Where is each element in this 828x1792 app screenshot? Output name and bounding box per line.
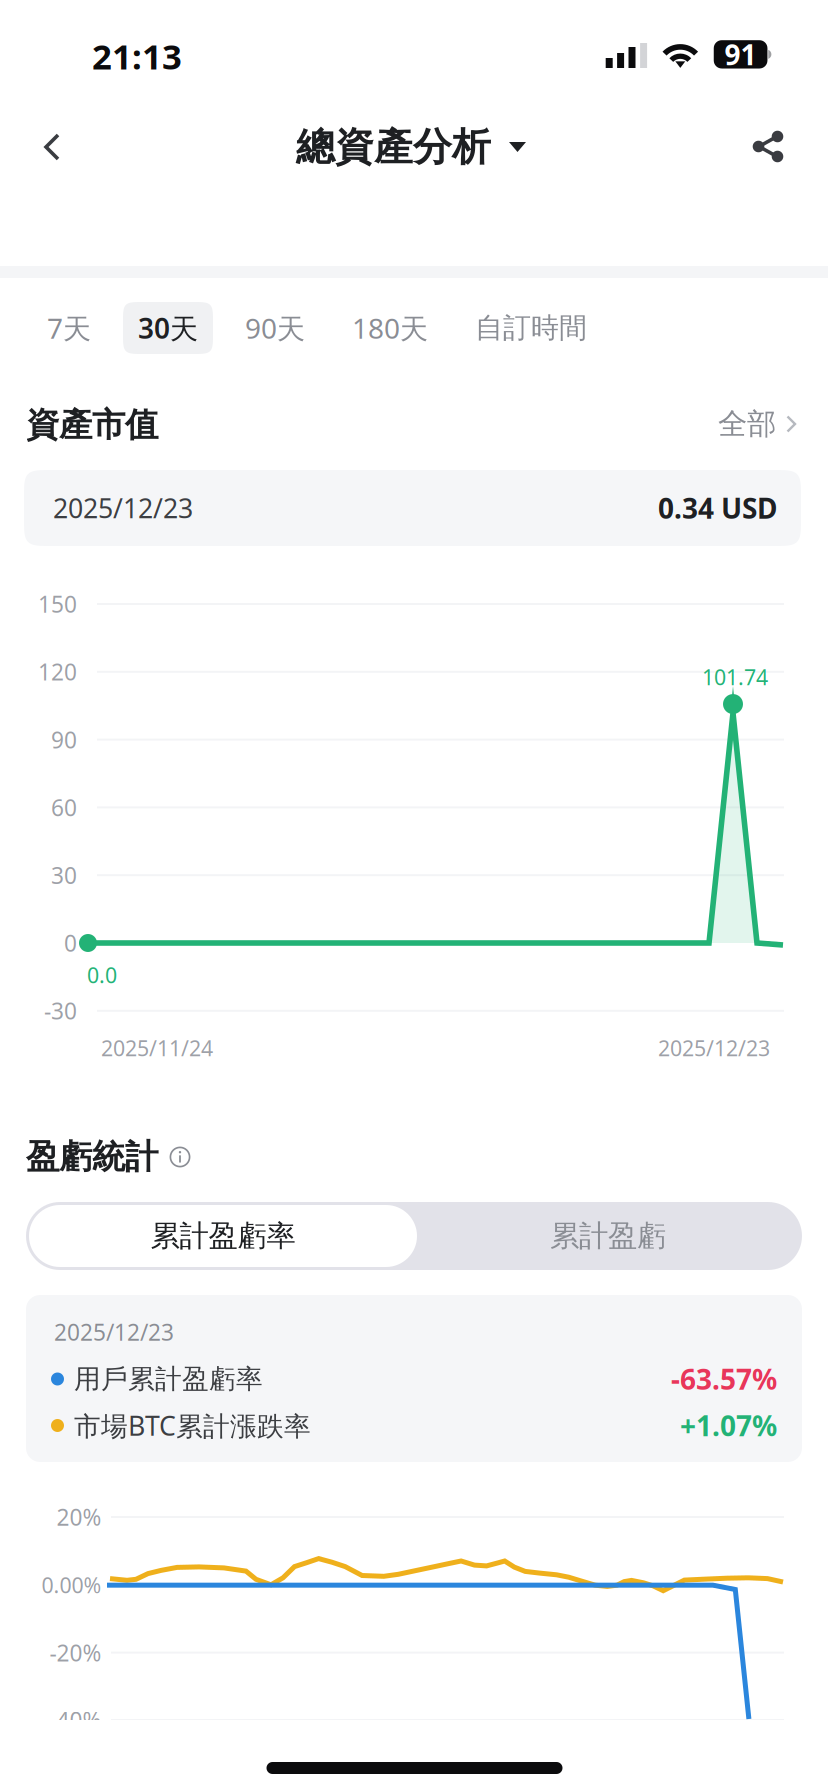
staticText: 7天 (47, 309, 91, 347)
staticText: 2025/12/23 (658, 1034, 770, 1062)
staticText: -40% (49, 1705, 101, 1735)
staticText: 101.74 (702, 663, 768, 691)
staticText: 0 (64, 928, 77, 958)
button[interactable]: 90天 (230, 302, 320, 354)
staticText: -20% (49, 1637, 101, 1668)
button[interactable]: 自訂時間 (460, 302, 602, 354)
staticText: 0.0 (87, 961, 117, 989)
staticText: 總資產分析 (296, 123, 491, 171)
staticText: +1.07% (680, 1407, 777, 1444)
staticText: 自訂時間 (475, 311, 587, 345)
button[interactable]: Share (728, 103, 808, 191)
staticText: 0.00% (41, 1571, 101, 1599)
staticText: 180天 (352, 309, 428, 347)
staticText: 0.34 USD (658, 489, 777, 527)
staticText: 30天 (138, 309, 198, 347)
staticText: 累計盈虧 (550, 1218, 666, 1254)
button[interactable]: 30天 (123, 302, 213, 354)
staticText: 2025/11/24 (101, 1034, 213, 1062)
button[interactable]: 累計盈虧率 (29, 1205, 417, 1267)
staticText: 2025/12/23 (53, 490, 193, 526)
button[interactable]: 全部 (714, 394, 802, 454)
staticText: 用戶累計盈虧率 (74, 1363, 263, 1395)
staticText: 市場BTC累計漲跌率 (74, 1408, 311, 1443)
button[interactable]: Back (12, 103, 92, 191)
staticText: 30 (51, 860, 77, 890)
staticText: -30 (44, 996, 77, 1026)
staticText: 累計盈虧率 (150, 1218, 295, 1254)
staticText: -63.57% (671, 1360, 777, 1398)
button[interactable]: 7天 (32, 302, 106, 354)
button[interactable]: 180天 (337, 302, 443, 354)
button[interactable]: 累計盈虧 (417, 1205, 799, 1267)
staticText: 90 (51, 724, 77, 755)
staticText: 資產市值 (26, 404, 158, 445)
staticText: 2025/12/23 (54, 1317, 174, 1347)
staticText: 120 (38, 657, 77, 687)
button[interactable]: 總資產分析 (288, 103, 534, 191)
staticText: 20% (56, 1502, 101, 1532)
staticText: 91 (725, 36, 757, 73)
staticText: 21:13 (92, 33, 182, 79)
staticText: 150 (38, 589, 77, 619)
staticText: 盈虧統計 (26, 1136, 158, 1177)
staticText: 全部 (718, 406, 776, 442)
staticText: 90天 (245, 309, 305, 347)
staticText: 60 (51, 792, 77, 822)
